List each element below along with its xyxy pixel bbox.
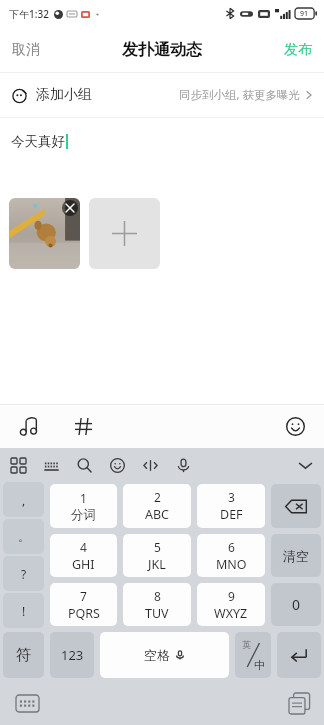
button[interactable]: Search	[72, 453, 96, 477]
button[interactable]: Keyboard layout	[39, 453, 63, 477]
button[interactable]: Backspace	[271, 484, 321, 528]
staticText: 发布	[284, 41, 312, 59]
button[interactable]: 6	[197, 534, 265, 577]
button[interactable]: Switch Chinese English	[235, 632, 271, 678]
button[interactable]: 5	[123, 534, 191, 577]
button[interactable]: 取消	[0, 27, 52, 72]
staticText: 下午1:32	[9, 7, 49, 21]
staticText: 。	[18, 529, 30, 544]
staticText: WXYZ	[214, 605, 248, 622]
button[interactable]: Hide keyboard	[293, 453, 317, 477]
staticText: 1	[80, 490, 87, 506]
button[interactable]: 清空	[271, 534, 321, 577]
staticText: JKL	[148, 556, 166, 573]
button[interactable]: Selected photo	[9, 198, 80, 269]
staticText: 清空	[283, 548, 309, 564]
button[interactable]: ?	[3, 556, 44, 591]
staticText: 8	[154, 588, 161, 604]
button[interactable]: 添加小组	[0, 73, 324, 117]
button[interactable]: 。	[3, 519, 44, 554]
button[interactable]: 2	[123, 484, 191, 528]
button[interactable]: Remove photo	[62, 200, 78, 216]
button[interactable]: 8	[123, 583, 191, 626]
button[interactable]: Add music	[12, 409, 46, 443]
staticText: 分词	[71, 507, 96, 523]
button[interactable]: 4	[50, 534, 117, 577]
staticText: 9	[228, 588, 235, 604]
button[interactable]: Move cursor	[138, 453, 162, 477]
button[interactable]: Emoji	[278, 409, 312, 443]
button[interactable]: !	[3, 593, 44, 628]
staticText: 今天真好	[11, 133, 65, 150]
button[interactable]: ,	[3, 482, 44, 517]
staticText: PQRS	[68, 605, 100, 622]
staticText: 取消	[12, 41, 40, 59]
staticText: ABC	[145, 506, 170, 523]
staticText: DEF	[220, 506, 243, 523]
button[interactable]: 123	[50, 632, 94, 678]
button[interactable]: Voice input	[171, 453, 195, 477]
staticText: 2	[154, 489, 161, 505]
staticText: 4	[80, 539, 87, 555]
button[interactable]: 3	[197, 484, 265, 528]
staticText: 发扑通动态	[122, 40, 202, 60]
button[interactable]: Clipboard	[289, 693, 310, 714]
button[interactable]: Add topic	[66, 409, 100, 443]
staticText: 6	[228, 539, 235, 555]
staticText: 5	[154, 539, 161, 555]
button[interactable]: 0	[271, 583, 321, 626]
staticText: 添加小组	[36, 86, 92, 104]
staticText: ,	[22, 492, 26, 508]
button[interactable]: Switch input method	[16, 695, 39, 712]
staticText: 同步到小组, 获更多曝光	[179, 87, 301, 103]
button[interactable]: 7	[50, 583, 117, 626]
staticText: MNO	[216, 556, 247, 573]
button[interactable]: Add photo	[89, 198, 160, 269]
staticText: 91	[300, 9, 309, 19]
button[interactable]: 符	[3, 632, 44, 678]
button[interactable]: 空格	[100, 632, 229, 678]
button[interactable]: Apps	[6, 453, 30, 477]
staticText: 符	[16, 646, 31, 665]
staticText: 0	[292, 595, 301, 614]
staticText: 中	[254, 658, 265, 672]
button[interactable]: 发布	[272, 27, 324, 72]
staticText: !	[22, 603, 26, 619]
staticText: 3	[228, 489, 235, 505]
staticText: 123	[61, 646, 84, 664]
staticText: 7	[80, 588, 87, 604]
staticText: TUV	[145, 605, 169, 622]
button[interactable]: 9	[197, 583, 265, 626]
staticText: 空格	[144, 647, 170, 663]
button[interactable]: Enter	[277, 632, 321, 678]
staticText: 英	[242, 639, 251, 650]
staticText: GHI	[72, 556, 95, 573]
button[interactable]: Emoji	[105, 453, 129, 477]
button[interactable]: 1	[50, 484, 117, 528]
staticText: ?	[21, 566, 27, 582]
